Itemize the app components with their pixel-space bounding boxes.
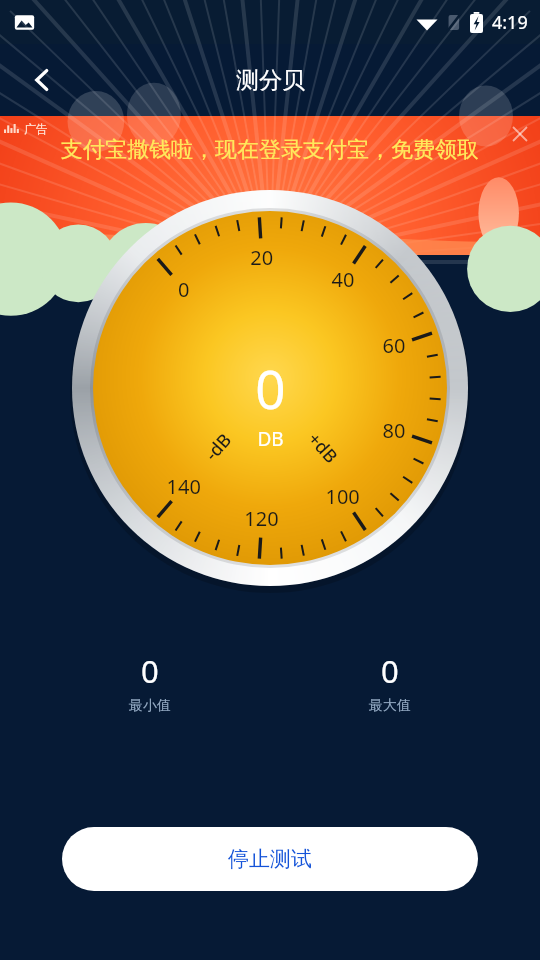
staticText: 0 <box>255 352 286 424</box>
staticText: 最大值 <box>369 697 411 715</box>
staticText: 广告 <box>24 121 48 136</box>
button[interactable]: Close ad <box>507 121 533 147</box>
button[interactable]: 停止测试 <box>62 827 478 891</box>
staticText: 停止测试 <box>228 846 312 872</box>
button[interactable]: Back <box>18 56 66 104</box>
button[interactable]: 广告 <box>0 116 540 255</box>
staticText: DB <box>257 426 284 452</box>
staticText: 0 <box>141 650 159 692</box>
staticText: 0 <box>381 650 399 692</box>
staticText: 测分贝 <box>236 66 305 95</box>
staticText: 最小值 <box>129 697 171 715</box>
staticText: 支付宝撒钱啦，现在登录支付宝，免费领取 <box>61 136 479 164</box>
staticText: 4:19 <box>492 10 528 35</box>
